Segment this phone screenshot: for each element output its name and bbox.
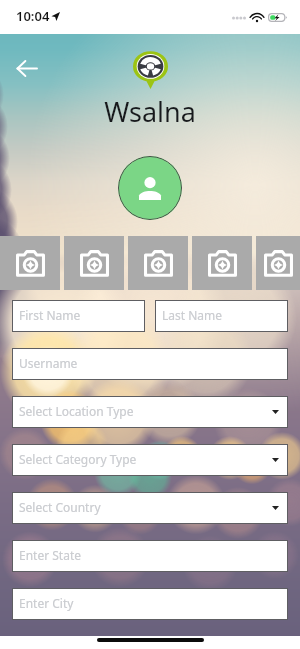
button[interactable]: Add photo xyxy=(192,236,252,290)
button[interactable]: Enter State xyxy=(12,540,288,572)
button[interactable]: Back xyxy=(8,49,46,87)
staticText: Last Name xyxy=(162,307,223,323)
button[interactable]: Add photo xyxy=(64,236,124,290)
button[interactable]: Add photo xyxy=(128,236,188,290)
staticText: Enter Address xyxy=(19,635,98,648)
button[interactable]: Add photo xyxy=(0,236,60,290)
button[interactable]: First Name xyxy=(12,300,145,332)
button[interactable]: Profile photo xyxy=(118,156,182,220)
staticText: Wsalna xyxy=(104,93,196,130)
staticText: 10:04 xyxy=(16,7,50,25)
button[interactable]: Last Name xyxy=(155,300,288,332)
button[interactable]: Add photo xyxy=(256,236,300,290)
button[interactable]: Enter Address xyxy=(12,636,288,649)
staticText: Select Category Type xyxy=(19,451,137,467)
staticText: Select Country xyxy=(19,499,101,515)
button[interactable]: Select Country xyxy=(12,492,288,524)
staticText: First Name xyxy=(19,307,81,323)
staticText: Username xyxy=(19,355,78,371)
staticText: Enter State xyxy=(19,547,82,563)
button[interactable]: Select Location Type xyxy=(12,396,288,428)
staticText: Enter City xyxy=(19,595,74,611)
button[interactable]: Username xyxy=(12,348,288,380)
staticText: Select Location Type xyxy=(19,403,134,419)
button[interactable]: Enter City xyxy=(12,588,288,620)
button[interactable]: Select Category Type xyxy=(12,444,288,476)
